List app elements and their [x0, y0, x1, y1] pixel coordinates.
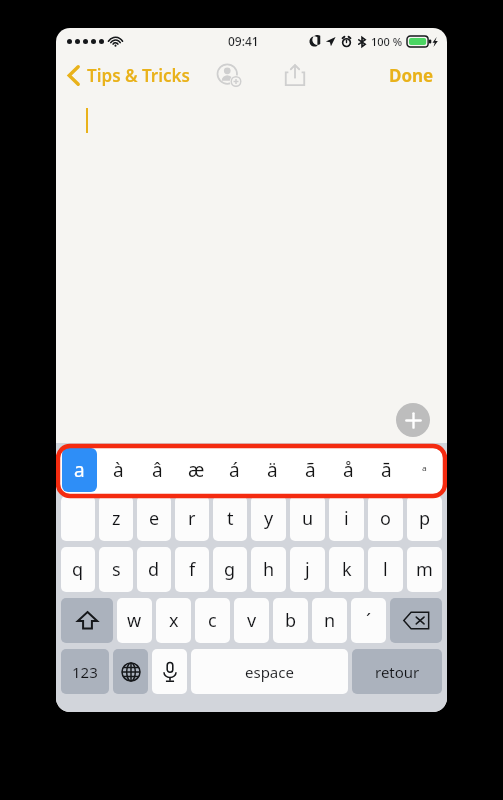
staticText: ã [305, 457, 316, 483]
staticText: a [74, 457, 85, 483]
button[interactable]: Add people [213, 59, 245, 91]
staticText: æ [188, 457, 205, 483]
staticText: espace [245, 662, 294, 682]
button[interactable]: ä [255, 448, 289, 492]
button[interactable]: à [101, 448, 136, 492]
button[interactable]: Share [279, 59, 311, 91]
button[interactable]: r [175, 496, 209, 541]
button[interactable]: ´ [351, 598, 386, 643]
button[interactable]: espace [191, 649, 348, 694]
staticText: n [324, 608, 336, 633]
button[interactable]: b [273, 598, 308, 643]
button[interactable]: ā [369, 448, 403, 492]
staticText: Done [389, 64, 434, 87]
button[interactable]: t [213, 496, 247, 541]
staticText: retour [375, 662, 420, 682]
button[interactable]: á [217, 448, 251, 492]
staticText: d [148, 557, 160, 582]
button[interactable]: j [290, 547, 325, 592]
button[interactable]: retour [352, 649, 442, 694]
button[interactable]: 123 [61, 649, 109, 694]
staticText: t [227, 506, 234, 531]
button[interactable]: f [175, 547, 209, 592]
staticText: 100 % [371, 34, 403, 49]
staticText: y [264, 506, 274, 531]
staticText: v [247, 608, 257, 633]
button[interactable]: ᵃ [407, 448, 441, 492]
button[interactable]: g [213, 547, 247, 592]
staticText: h [263, 557, 275, 582]
button[interactable]: n [312, 598, 347, 643]
button[interactable]: Done [389, 64, 434, 87]
staticText: u [302, 506, 314, 531]
button[interactable]: ã [293, 448, 327, 492]
staticText: o [380, 506, 391, 531]
button[interactable]: k [329, 547, 364, 592]
button[interactable]: d [137, 547, 171, 592]
button[interactable]: a [62, 448, 97, 492]
button[interactable]: å [331, 448, 365, 492]
button[interactable]: o [368, 496, 403, 541]
button[interactable]: m [407, 547, 442, 592]
button[interactable]: h [251, 547, 286, 592]
button[interactable]: w [117, 598, 152, 643]
staticText: b [285, 608, 297, 633]
button[interactable]: Dictate [152, 649, 187, 694]
staticText: á [229, 457, 240, 483]
staticText: c [208, 608, 217, 633]
staticText: ā [381, 457, 392, 483]
staticText: l [383, 557, 388, 582]
staticText: p [419, 506, 431, 531]
button[interactable]: Backspace [390, 598, 442, 643]
staticText: ᵃ [422, 461, 427, 479]
button[interactable]: y [251, 496, 286, 541]
button[interactable]: e [137, 496, 171, 541]
button[interactable]: i [329, 496, 364, 541]
staticText: w [127, 608, 142, 633]
staticText: q [72, 557, 84, 582]
button[interactable]: Shift [61, 598, 113, 643]
button[interactable]: l [368, 547, 403, 592]
button[interactable]: æ [179, 448, 213, 492]
staticText: à [113, 457, 124, 483]
staticText: Tips & Tricks [87, 64, 190, 87]
staticText: f [189, 557, 196, 582]
button[interactable]: c [195, 598, 230, 643]
staticText: ´ [366, 608, 372, 633]
staticText: j [305, 557, 310, 582]
staticText: e [149, 506, 160, 531]
button[interactable]: u [290, 496, 325, 541]
staticText: i [344, 506, 349, 531]
staticText: â [152, 457, 163, 483]
staticText: g [224, 557, 236, 582]
staticText: å [343, 457, 354, 483]
button[interactable]: Add attachment [396, 403, 430, 437]
button[interactable]: q [61, 547, 95, 592]
staticText: z [112, 506, 121, 531]
button[interactable]: x [156, 598, 191, 643]
staticText: k [342, 557, 352, 582]
button[interactable]: p [407, 496, 442, 541]
staticText: x [169, 608, 179, 633]
staticText: m [416, 557, 433, 582]
staticText: r [188, 506, 196, 531]
staticText: s [112, 557, 121, 582]
button[interactable]: z [99, 496, 133, 541]
button[interactable]: Change keyboard [113, 649, 148, 694]
staticText: ä [267, 457, 278, 483]
button[interactable]: s [99, 547, 133, 592]
staticText: 09:41 [228, 33, 259, 49]
staticText: 123 [72, 662, 98, 682]
button[interactable] [61, 496, 95, 541]
button[interactable]: â [140, 448, 175, 492]
button[interactable]: v [234, 598, 269, 643]
button[interactable]: Tips & Tricks [68, 64, 190, 87]
